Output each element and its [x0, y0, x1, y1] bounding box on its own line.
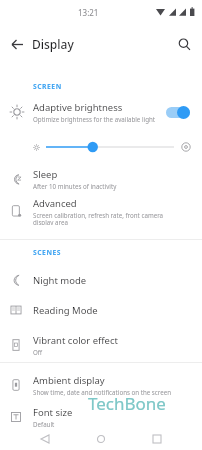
staticText: Advanced	[33, 197, 77, 210]
button[interactable]: Night mode	[0, 269, 202, 291]
button[interactable]: Sleep	[0, 165, 202, 193]
staticText: Night mode	[33, 274, 87, 287]
staticText: Adaptive brightness	[33, 101, 123, 114]
button[interactable]: Font size	[0, 403, 202, 431]
staticText: Font size	[33, 406, 73, 419]
staticText: TechBone	[88, 392, 166, 415]
button[interactable]: Adaptive brightness toggle	[166, 104, 192, 120]
button[interactable]: Back	[7, 34, 27, 54]
button[interactable]: Search	[173, 33, 195, 55]
staticText: Ambient display	[33, 374, 105, 387]
button[interactable]: Reading Mode	[0, 299, 202, 321]
button[interactable]: Recent apps	[146, 428, 168, 450]
button[interactable]: Vibrant color effect	[0, 331, 202, 359]
staticText: Reading Mode	[33, 304, 98, 317]
staticText: Off	[33, 348, 43, 356]
staticText: Show time, date and notifications on the…	[33, 388, 172, 396]
staticText: 13:21	[78, 7, 99, 18]
button[interactable]: Adaptive brightness	[0, 96, 202, 128]
button[interactable]: Back	[34, 428, 56, 450]
staticText: Default	[33, 420, 55, 428]
button[interactable]: Ambient display	[0, 371, 202, 399]
staticText: Display	[32, 36, 74, 52]
button[interactable]: Home	[90, 428, 112, 450]
button[interactable]: Advanced	[0, 197, 202, 225]
staticText: Vibrant color effect	[33, 334, 118, 347]
staticText: SCREEN	[33, 82, 62, 91]
staticText: Screen calibration, refresh rate, front …	[33, 211, 183, 225]
staticText: Optimize brightness for the available li…	[33, 115, 156, 123]
staticText: After 10 minutes of inactivity	[33, 182, 117, 190]
staticText: SCENES	[33, 248, 61, 257]
staticText: Sleep	[33, 168, 58, 181]
button[interactable]	[0, 137, 202, 157]
